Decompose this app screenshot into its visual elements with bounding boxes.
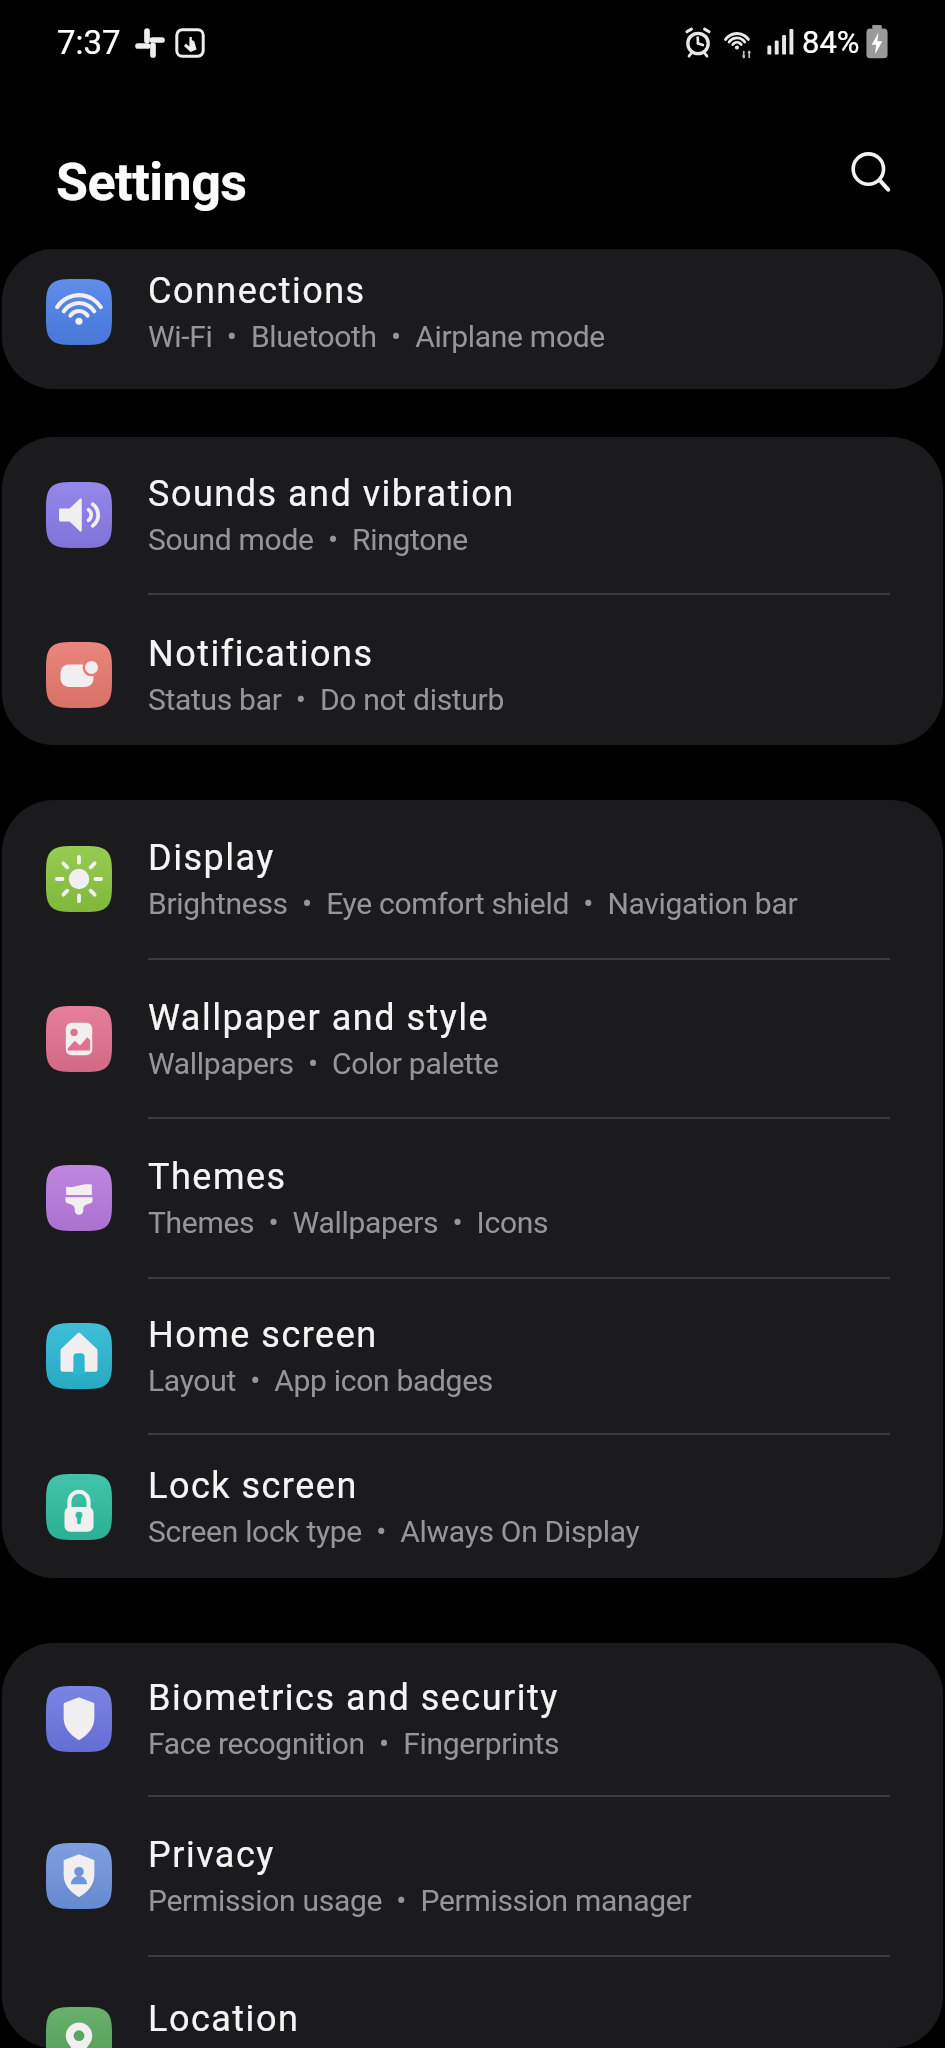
staticText: Location [148,1998,300,2040]
button[interactable]: Wallpaper and style [2,960,943,1117]
staticText: Wi-Fi • Bluetooth • Airplane mode [148,319,605,354]
staticText: Connections [148,270,366,312]
staticText: Status bar • Do not disturb [148,682,504,717]
staticText: Sound mode • Ringtone [148,522,468,557]
button[interactable]: Biometrics and security [2,1643,943,1795]
staticText: Wallpapers • Color palette [148,1046,499,1081]
staticText: Lock screen [148,1465,358,1507]
staticText: Themes • Wallpapers • Icons [148,1205,549,1240]
staticText: Permission usage • Permission manager [148,1883,692,1918]
button[interactable]: Connections [2,249,943,389]
staticText: Privacy [148,1834,275,1876]
staticText: Brightness • Eye comfort shield • Naviga… [148,886,798,921]
staticText: Screen lock type • Always On Display [148,1514,640,1549]
staticText: 7:37 [57,23,121,62]
staticText: Face recognition • Fingerprints [148,1726,560,1761]
staticText: Themes [148,1156,287,1198]
button[interactable]: Sounds and vibration [2,437,943,593]
staticText: Display [148,837,275,879]
staticText: Layout • App icon badges [148,1363,493,1398]
staticText: 84% [802,24,860,60]
button[interactable]: Privacy [2,1797,943,1955]
button[interactable]: Notifications [2,595,943,745]
staticText: Sounds and vibration [148,473,515,515]
button[interactable]: Home screen [2,1279,943,1433]
staticText: Notifications [148,633,374,675]
button[interactable] [849,145,893,189]
staticText: Home screen [148,1314,378,1356]
button[interactable]: Lock screen [2,1435,943,1578]
button[interactable]: Themes [2,1119,943,1277]
staticText: Settings [56,152,247,213]
button[interactable]: Location [2,1957,943,2048]
button[interactable]: Display [2,800,943,958]
staticText: Wallpaper and style [148,997,490,1039]
staticText: Biometrics and security [148,1677,559,1719]
